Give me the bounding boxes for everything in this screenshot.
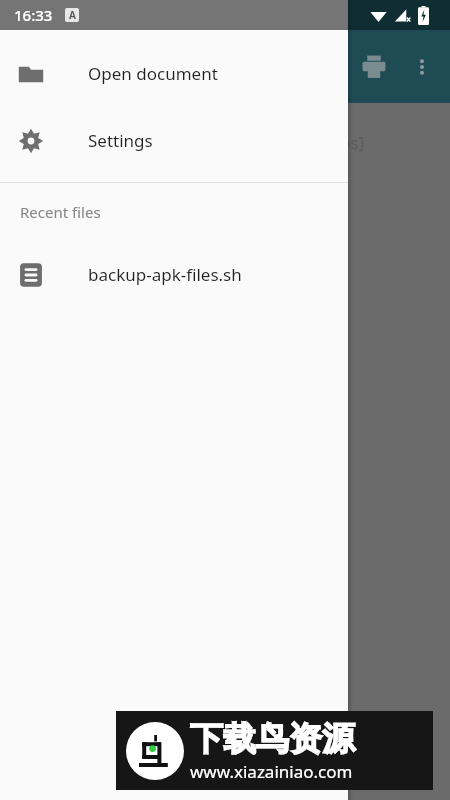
staticText: Settings [88, 129, 153, 152]
button[interactable]: Settings [0, 107, 348, 174]
button[interactable]: More options [398, 43, 446, 91]
staticText: www.xiazainiao.com [190, 760, 353, 783]
button[interactable]: Open document [0, 40, 348, 107]
staticText: # the script below will backup all [8, 214, 267, 237]
button[interactable]: backup-apk-files.sh [0, 241, 348, 308]
staticText: Recent files [20, 202, 101, 222]
staticText: adb shell pm list packages -3 [--system-… [8, 131, 365, 154]
staticText: Open document [88, 62, 218, 85]
staticText: backup-apk-files.sh [88, 263, 242, 286]
staticText: 16:33 [14, 5, 53, 25]
button[interactable]: Print [350, 43, 398, 91]
staticText: 下载鸟资源 [190, 718, 355, 760]
staticText: A [69, 8, 76, 22]
